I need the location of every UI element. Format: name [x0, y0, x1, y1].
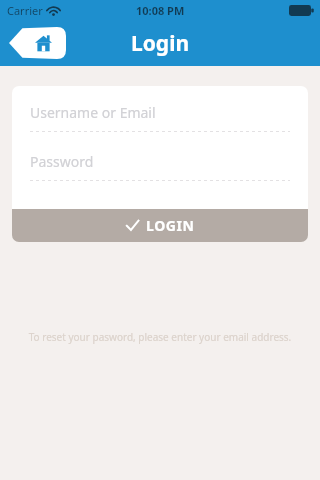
button[interactable]: LOGIN	[12, 209, 308, 242]
button[interactable]: Password	[30, 152, 290, 181]
staticText: Password	[30, 152, 94, 171]
staticText: 10:08 PM	[136, 3, 185, 18]
button[interactable]: Username or Email	[30, 103, 290, 132]
staticText: Username or Email	[30, 103, 156, 122]
button[interactable]: Home	[9, 27, 66, 59]
staticText: Login	[131, 29, 190, 58]
staticText: LOGIN	[146, 216, 195, 235]
staticText: Carrier	[7, 3, 43, 18]
staticText: To reset your pasword, please enter your…	[16, 330, 304, 344]
